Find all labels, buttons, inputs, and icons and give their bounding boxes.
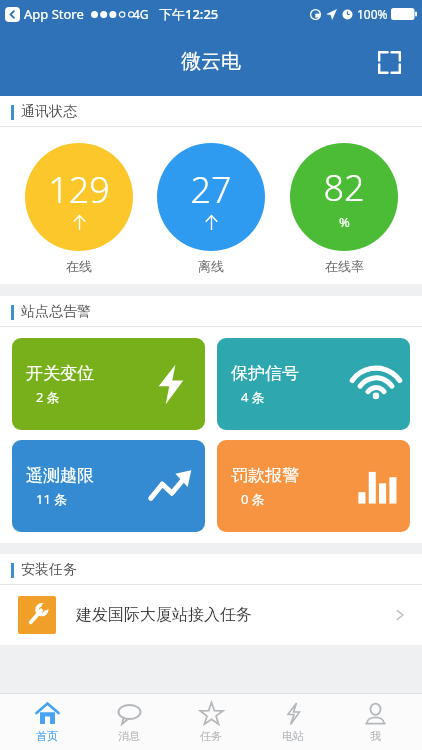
staticText: 2 条	[36, 388, 60, 406]
staticText: 4 条	[241, 388, 265, 406]
staticText: 100%	[357, 6, 388, 22]
button[interactable]: 消息	[94, 694, 164, 750]
staticText: 在线	[66, 258, 92, 274]
staticText: 离线	[198, 258, 224, 274]
staticText: 电站	[282, 729, 304, 743]
staticText: 129	[48, 165, 110, 214]
staticText: 下午12:25	[159, 5, 219, 23]
button[interactable]: 27	[157, 143, 265, 274]
button[interactable]: 129	[25, 143, 133, 274]
staticText: 通讯状态	[21, 103, 77, 121]
button[interactable]: 建发国际大厦站接入任务	[0, 585, 422, 645]
staticText: 安装任务	[21, 561, 77, 579]
button[interactable]: 罚款报警	[217, 440, 410, 532]
staticText: 建发国际大厦站接入任务	[76, 605, 392, 625]
staticText: 消息	[118, 729, 140, 743]
staticText: 我	[370, 729, 381, 743]
button[interactable]: 遥测越限	[12, 440, 205, 532]
button[interactable]: 82	[290, 143, 398, 274]
button[interactable]: 我	[340, 694, 410, 750]
button[interactable]: 电站	[258, 694, 328, 750]
staticText: 27	[190, 165, 232, 214]
staticText: 罚款报警	[231, 465, 299, 486]
staticText: 11 条	[36, 490, 68, 508]
staticText: App Store	[24, 5, 84, 23]
button[interactable]: 开关变位	[12, 338, 205, 430]
staticText: 4G	[133, 6, 149, 22]
staticText: 0 条	[241, 490, 265, 508]
button[interactable]: 任务	[176, 694, 246, 750]
button[interactable]: Scan	[368, 41, 410, 83]
staticText: 在线率	[325, 258, 364, 274]
button[interactable]: 首页	[12, 694, 82, 750]
staticText: 任务	[200, 729, 222, 743]
staticText: 保护信号	[231, 363, 299, 384]
staticText: 82	[323, 163, 365, 212]
staticText: 站点总告警	[21, 303, 91, 321]
button[interactable]: 保护信号	[217, 338, 410, 430]
staticText: %	[339, 213, 350, 231]
staticText: 遥测越限	[26, 465, 94, 486]
staticText: 开关变位	[26, 363, 94, 384]
staticText: 首页	[36, 729, 58, 743]
staticText: 微云电	[181, 49, 241, 74]
